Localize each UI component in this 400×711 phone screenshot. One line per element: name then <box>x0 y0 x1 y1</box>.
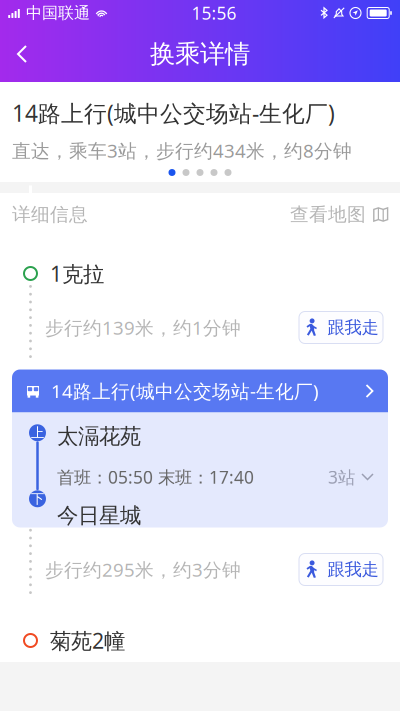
staticText: 今日星城 <box>57 502 141 529</box>
staticText: 14路上行(城中公交场站-生化厂) <box>51 379 319 403</box>
staticText: 中国联通 <box>26 3 90 23</box>
staticText: 菊苑2幢 <box>50 626 125 655</box>
staticText: 3站 <box>328 465 355 488</box>
staticText: 首班：05:50 末班：17:40 <box>57 465 254 488</box>
staticText: 太滆花苑 <box>57 423 141 449</box>
button[interactable]: 跟我走 <box>299 553 383 585</box>
button[interactable]: 14路上行(城中公交场站-生化厂) <box>12 369 388 412</box>
staticText: 直达，乘车3站，步行约434米，约8分钟 <box>12 138 352 163</box>
button[interactable]: 跟我走 <box>299 311 383 343</box>
button[interactable]: 3站 <box>328 459 374 494</box>
staticText: 1克拉 <box>50 259 104 288</box>
button[interactable]: 查看地图 <box>290 195 388 234</box>
staticText: 15:56 <box>191 1 236 24</box>
staticText: 查看地图 <box>290 203 366 226</box>
staticText: 下 <box>31 491 44 507</box>
staticText: 跟我走 <box>327 559 378 580</box>
staticText: 跟我走 <box>327 317 378 338</box>
staticText: 步行约295米，约3分钟 <box>45 557 241 582</box>
staticText: 14路上行(城中公交场站-生化厂) <box>12 98 335 128</box>
staticText: 换乘详情 <box>150 38 250 69</box>
button[interactable]: 返回 <box>0 32 44 76</box>
staticText: 上 <box>31 425 44 441</box>
staticText: 详细信息 <box>12 203 88 226</box>
staticText: 步行约139米，约1分钟 <box>45 315 241 340</box>
